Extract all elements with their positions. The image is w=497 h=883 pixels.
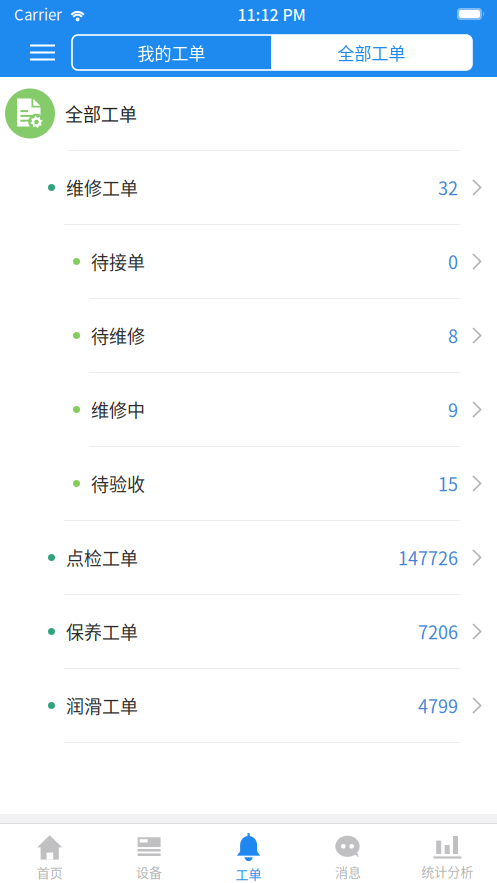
button[interactable]: 首页 — [0, 826, 99, 881]
button[interactable]: 保养工单 — [0, 595, 497, 668]
button[interactable]: 待维修 — [0, 299, 497, 372]
button[interactable]: 维修工单 — [0, 151, 497, 224]
staticText: 设备 — [136, 862, 162, 881]
button[interactable]: 全部工单 — [271, 35, 472, 70]
staticText: 维修中 — [91, 396, 145, 423]
staticText: 点检工单 — [66, 544, 138, 571]
staticText: 润滑工单 — [66, 692, 138, 719]
staticText: 维修工单 — [66, 174, 138, 201]
staticText: 待维修 — [91, 322, 145, 349]
staticText: 15 — [438, 470, 458, 497]
staticText: Carrier — [14, 3, 62, 25]
button[interactable]: 统计分析 — [398, 827, 497, 880]
staticText: 统计分析 — [421, 862, 473, 880]
button[interactable]: 待验收 — [0, 447, 497, 520]
staticText: 11:12 PM — [237, 2, 305, 26]
staticText: 待验收 — [91, 470, 145, 497]
button[interactable]: 工单 — [199, 824, 298, 883]
button[interactable]: 我的工单 — [72, 35, 271, 70]
staticText: 147726 — [398, 544, 458, 571]
staticText: 全部工单 — [337, 40, 405, 65]
staticText: 8 — [448, 322, 458, 349]
staticText: 首页 — [37, 863, 63, 881]
staticText: 保养工单 — [66, 618, 138, 645]
staticText: 32 — [438, 174, 458, 201]
staticText: 0 — [448, 248, 458, 275]
button[interactable]: 设备 — [99, 826, 199, 881]
button[interactable]: Menu — [30, 33, 55, 71]
staticText: 4799 — [418, 692, 458, 719]
staticText: 我的工单 — [137, 40, 205, 65]
staticText: 全部工单 — [65, 100, 137, 127]
button[interactable]: 点检工单 — [0, 521, 497, 594]
staticText: 待接单 — [91, 248, 145, 275]
staticText: 消息 — [335, 862, 361, 881]
button[interactable]: 消息 — [298, 826, 398, 881]
staticText: 7206 — [418, 618, 458, 645]
staticText: 工单 — [235, 864, 261, 883]
button[interactable]: 维修中 — [0, 373, 497, 446]
button[interactable]: 润滑工单 — [0, 669, 497, 742]
staticText: 9 — [448, 396, 458, 423]
button[interactable]: 待接单 — [0, 225, 497, 298]
